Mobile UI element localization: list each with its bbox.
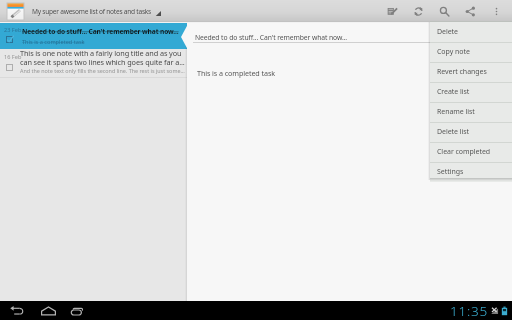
button[interactable]: Rename list bbox=[430, 102, 512, 122]
staticText: Needed to do stuff... Can't remember wha… bbox=[22, 27, 179, 36]
staticText: This is a completed task bbox=[22, 38, 85, 46]
button[interactable]: Clear completed bbox=[430, 142, 512, 162]
staticText: Clear completed bbox=[437, 147, 491, 157]
button[interactable]: Home bbox=[38, 301, 58, 320]
staticText: This is one note with a fairly long titl… bbox=[20, 48, 186, 67]
button[interactable]: Recent apps bbox=[68, 301, 88, 320]
button[interactable]: Settings bbox=[430, 162, 512, 182]
button[interactable]: Delete bbox=[430, 22, 512, 42]
staticText: 16 Feb bbox=[4, 53, 22, 61]
staticText: Delete list bbox=[437, 127, 470, 137]
staticText: Needed to do stuff... Can't remember wha… bbox=[195, 33, 348, 42]
button[interactable]: Refresh bbox=[405, 0, 431, 22]
button[interactable]: New note bbox=[379, 0, 405, 22]
staticText: Copy note bbox=[437, 47, 470, 57]
staticText: Delete bbox=[437, 27, 458, 37]
button[interactable]: My super awesome list of notes and tasks bbox=[0, 0, 161, 22]
button[interactable]: Delete list bbox=[430, 122, 512, 142]
button[interactable]: 16 Feb bbox=[0, 49, 187, 77]
staticText: 11:35 bbox=[450, 302, 489, 320]
button[interactable]: 23 Feb bbox=[0, 23, 187, 49]
staticText: And the note text only fills the second … bbox=[20, 67, 186, 74]
button[interactable]: Create list bbox=[430, 82, 512, 102]
button[interactable]: Revert changes bbox=[430, 62, 512, 82]
button[interactable]: Share bbox=[457, 0, 483, 22]
staticText: My super awesome list of notes and tasks bbox=[32, 7, 151, 16]
staticText: This is a completed task bbox=[197, 68, 275, 78]
staticText: 23 Feb bbox=[4, 26, 22, 34]
button[interactable]: More options bbox=[483, 0, 509, 22]
button[interactable]: Search bbox=[431, 0, 457, 22]
staticText: Settings bbox=[437, 167, 464, 177]
button[interactable]: Copy note bbox=[430, 42, 512, 62]
button[interactable]: Back bbox=[8, 301, 26, 320]
staticText: Create list bbox=[437, 87, 470, 97]
staticText: Revert changes bbox=[437, 67, 487, 77]
staticText: Rename list bbox=[437, 107, 475, 117]
